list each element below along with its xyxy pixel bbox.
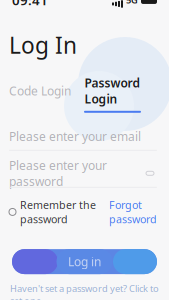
- staticText: 09:41: [12, 0, 48, 9]
- staticText: Password Login: [84, 75, 140, 107]
- staticText: Code Login: [9, 83, 71, 99]
- button[interactable]: Remember the password: [9, 198, 96, 226]
- staticText: Log In: [9, 30, 77, 60]
- button[interactable]: Forgot password: [109, 198, 157, 226]
- button[interactable]: Code Login: [9, 83, 71, 105]
- staticText: Please enter your email: [9, 128, 141, 144]
- staticText: Remember the password: [20, 198, 96, 226]
- button[interactable]: Show password: [143, 168, 157, 178]
- staticText: Please enter your password: [9, 157, 107, 189]
- staticText: Log in: [68, 254, 101, 269]
- staticText: Haven't set a password yet? Click to set…: [10, 282, 159, 300]
- button[interactable]: Haven't set a password yet? Click to set…: [0, 282, 169, 300]
- staticText: Forgot password: [109, 198, 157, 226]
- button[interactable]: Password Login: [84, 75, 141, 113]
- staticText: 5G: [126, 0, 138, 6]
- button[interactable]: Log in: [12, 249, 157, 274]
